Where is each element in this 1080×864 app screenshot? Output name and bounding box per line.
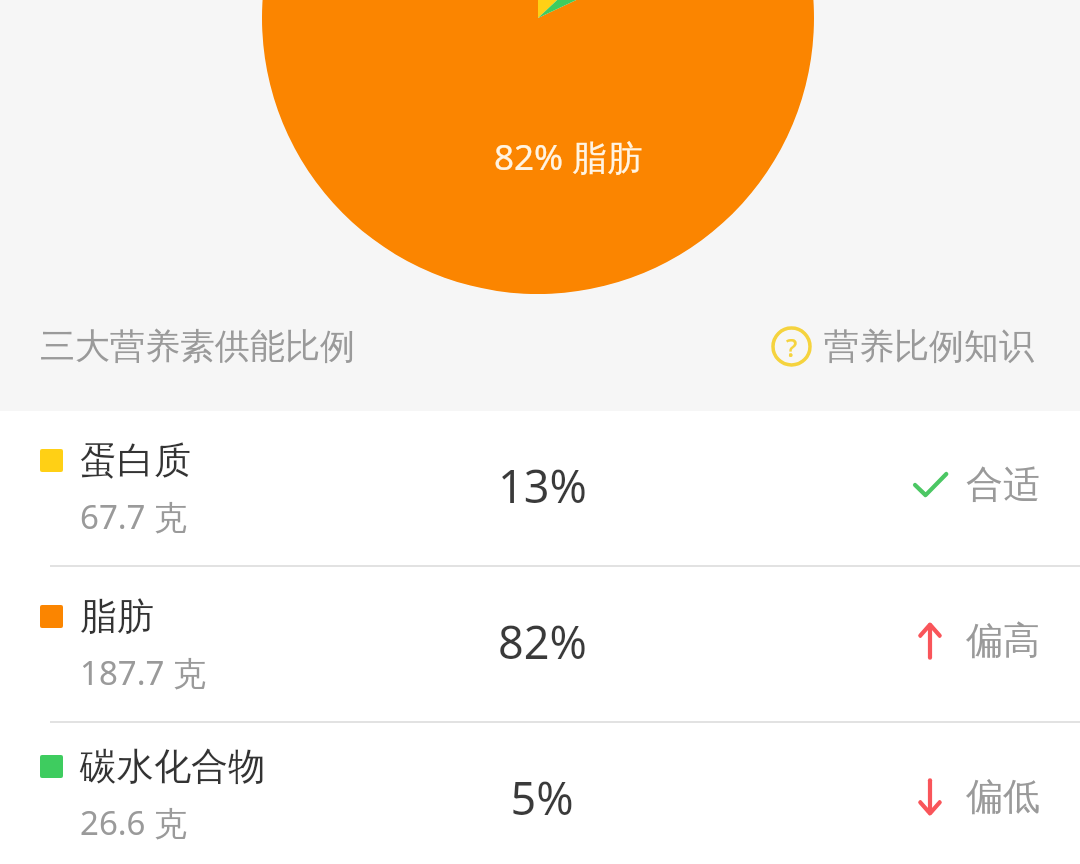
- staticText: 82%: [498, 611, 587, 672]
- staticText: 三大营养素供能比例: [40, 324, 355, 368]
- staticText: 脂肪: [80, 593, 154, 640]
- staticText: 82% 脂肪: [494, 133, 643, 181]
- button[interactable]: 营养比例知识帮助: [771, 324, 1034, 368]
- button[interactable]: 蛋白质: [0, 411, 1080, 565]
- staticText: 13%: [498, 455, 587, 516]
- staticText: 26.6 克: [80, 800, 188, 845]
- staticText: 67.7 克: [80, 494, 188, 539]
- button[interactable]: 碳水化合物: [0, 723, 1080, 864]
- staticText: 合适: [966, 461, 1040, 508]
- staticText: 营养比例知识: [824, 324, 1034, 368]
- button[interactable]: 脂肪: [0, 567, 1080, 721]
- staticText: 蛋白质: [80, 437, 191, 484]
- staticText: 偏高: [966, 617, 1040, 664]
- staticText: 187.7 克: [80, 650, 206, 695]
- staticText: 碳水化合物: [80, 743, 265, 790]
- staticText: 5%: [510, 767, 574, 828]
- staticText: ?: [786, 330, 798, 364]
- other: 营养比例知识帮助: [771, 326, 812, 367]
- staticText: 偏低: [966, 773, 1040, 820]
